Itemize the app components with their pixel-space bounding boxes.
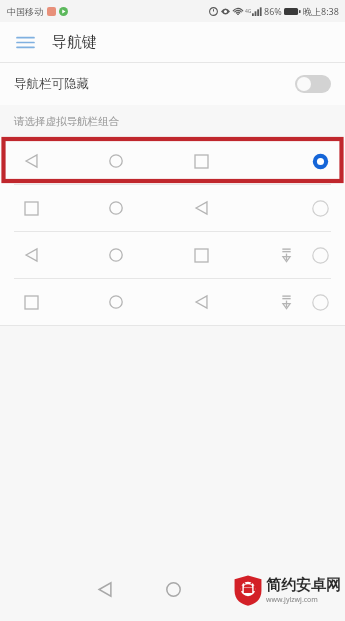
- button[interactable]: 导航栏可隐藏: [0, 63, 345, 105]
- button[interactable]: Option: [0, 185, 345, 231]
- button[interactable]: Option: [309, 244, 331, 266]
- staticText: 请选择虚拟导航栏组合: [14, 115, 119, 128]
- staticText: 中国移动: [7, 6, 43, 17]
- staticText: 导航栏可隐藏: [14, 76, 89, 92]
- staticText: 4G: [245, 8, 252, 15]
- staticText: 晚上8:38: [303, 5, 339, 17]
- button[interactable]: Back: [90, 574, 120, 604]
- staticText: 86%: [264, 5, 282, 17]
- other: Toggle navigation bar hide: [295, 75, 331, 93]
- button[interactable]: Option: [0, 232, 345, 278]
- staticText: 简约安卓网: [266, 576, 341, 595]
- button[interactable]: Option: [0, 279, 345, 325]
- button[interactable]: Selected option: [309, 150, 331, 172]
- button[interactable]: Option: [309, 291, 331, 313]
- button[interactable]: Option: [309, 197, 331, 219]
- staticText: 导航键: [52, 33, 97, 52]
- staticText: www.jylzwj.com: [266, 595, 318, 605]
- button[interactable]: Selected option: [0, 137, 345, 184]
- button[interactable]: Home: [158, 574, 188, 604]
- button[interactable]: Menu: [10, 27, 40, 57]
